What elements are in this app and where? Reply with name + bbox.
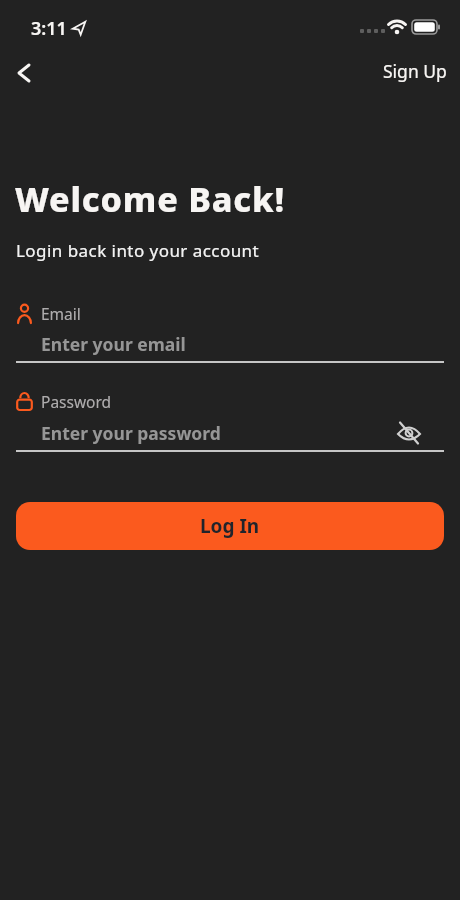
staticText: Login back into your account bbox=[16, 239, 260, 262]
staticText: Welcome Back! bbox=[15, 176, 286, 222]
staticText: Enter your password bbox=[41, 421, 221, 445]
button[interactable] bbox=[394, 418, 424, 448]
staticText: Password bbox=[41, 391, 112, 412]
button[interactable] bbox=[8, 58, 40, 88]
button[interactable]: Enter your password bbox=[16, 414, 444, 452]
staticText: Enter your email bbox=[41, 332, 186, 356]
staticText: Log In bbox=[200, 513, 260, 539]
staticText: Email bbox=[41, 303, 81, 324]
staticText: 3:11 bbox=[31, 16, 67, 41]
button[interactable]: Sign Up bbox=[379, 57, 451, 85]
button[interactable]: Log In bbox=[16, 502, 444, 550]
button[interactable]: Enter your email bbox=[16, 326, 444, 363]
staticText: Sign Up bbox=[383, 59, 447, 83]
